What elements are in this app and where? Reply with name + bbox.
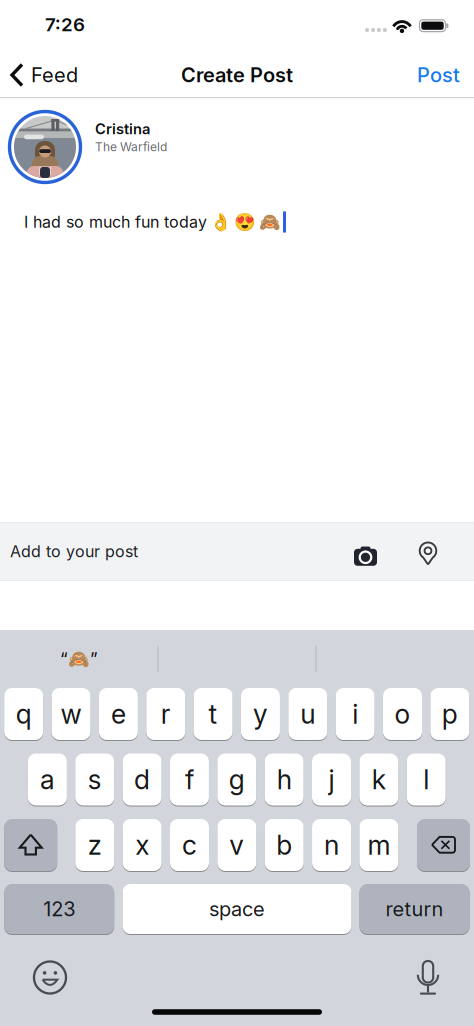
staticText: s xyxy=(88,764,102,795)
staticText: y xyxy=(253,698,268,730)
staticText: v xyxy=(229,829,244,861)
staticText: I had so much fun today xyxy=(24,213,207,231)
button[interactable]: k xyxy=(359,753,398,805)
staticText: n xyxy=(324,829,339,861)
button[interactable]: i xyxy=(336,688,375,740)
button[interactable]: Check in location xyxy=(411,540,445,570)
button[interactable]: “🙈” xyxy=(4,639,154,679)
staticText: 😍 xyxy=(234,212,256,232)
staticText: Cristina xyxy=(95,120,150,138)
staticText: i xyxy=(352,698,358,730)
button[interactable]: c xyxy=(170,819,209,871)
button[interactable]: return xyxy=(359,884,469,934)
staticText: d xyxy=(134,764,150,795)
button[interactable]: q xyxy=(4,688,43,740)
button[interactable]: Emoji keyboard xyxy=(31,958,69,996)
button[interactable]: Shift xyxy=(4,819,57,871)
staticText: 👌 xyxy=(209,212,231,232)
button[interactable]: Post xyxy=(380,53,460,97)
staticText: “🙈” xyxy=(60,649,98,669)
staticText: l xyxy=(423,764,429,795)
staticText: m xyxy=(367,829,390,861)
button[interactable]: Delete xyxy=(417,819,470,871)
staticText: x xyxy=(135,829,149,861)
button[interactable]: h xyxy=(265,753,304,805)
button[interactable]: d xyxy=(123,753,162,805)
staticText: b xyxy=(276,829,292,861)
staticText: Post xyxy=(417,63,460,87)
button[interactable]: j xyxy=(312,753,351,805)
staticText: 123 xyxy=(43,897,75,921)
staticText: e xyxy=(111,698,126,730)
button[interactable]: o xyxy=(383,688,422,740)
button[interactable]: space xyxy=(122,884,351,934)
staticText: f xyxy=(185,764,194,795)
staticText: 7:26 xyxy=(45,13,85,35)
button[interactable]: Back to Feed xyxy=(10,53,78,97)
button[interactable]: z xyxy=(75,819,114,871)
button[interactable]: l xyxy=(407,753,446,805)
staticText: u xyxy=(300,698,315,730)
button[interactable]: v xyxy=(217,819,256,871)
button[interactable]: s xyxy=(75,753,114,805)
button[interactable]: a xyxy=(28,753,67,805)
button[interactable]: Dictation xyxy=(408,956,448,996)
staticText: o xyxy=(394,698,410,730)
staticText: j xyxy=(328,764,334,795)
staticText: The Warfield xyxy=(95,140,167,154)
button[interactable]: e xyxy=(99,688,138,740)
staticText: z xyxy=(88,829,102,861)
staticText: p xyxy=(442,698,458,730)
staticText: a xyxy=(40,764,55,795)
button[interactable]: t xyxy=(194,688,233,740)
button[interactable]: f xyxy=(170,753,209,805)
staticText: q xyxy=(16,698,32,730)
staticText: space xyxy=(209,897,265,921)
button[interactable]: g xyxy=(217,753,256,805)
button[interactable]: x xyxy=(123,819,162,871)
staticText: g xyxy=(229,764,245,795)
staticText: w xyxy=(61,698,82,730)
button[interactable]: w xyxy=(52,688,91,740)
button[interactable]: r xyxy=(146,688,185,740)
staticText: Feed xyxy=(31,63,78,87)
staticText: Add to your post xyxy=(10,542,138,561)
button[interactable]: u xyxy=(288,688,327,740)
button[interactable]: m xyxy=(359,819,398,871)
button[interactable]: p xyxy=(430,688,469,740)
button[interactable]: Add photo xyxy=(348,539,382,573)
staticText: return xyxy=(385,897,443,921)
staticText: t xyxy=(209,698,218,730)
staticText: Create Post xyxy=(181,63,293,87)
button[interactable]: y xyxy=(241,688,280,740)
button[interactable]: 123 xyxy=(4,884,114,934)
button[interactable]: n xyxy=(312,819,351,871)
staticText: r xyxy=(161,698,171,730)
staticText: 🙈 xyxy=(258,212,280,232)
button[interactable]: b xyxy=(265,819,304,871)
staticText: c xyxy=(182,829,197,861)
staticText: h xyxy=(277,764,292,795)
staticText: k xyxy=(372,764,386,795)
